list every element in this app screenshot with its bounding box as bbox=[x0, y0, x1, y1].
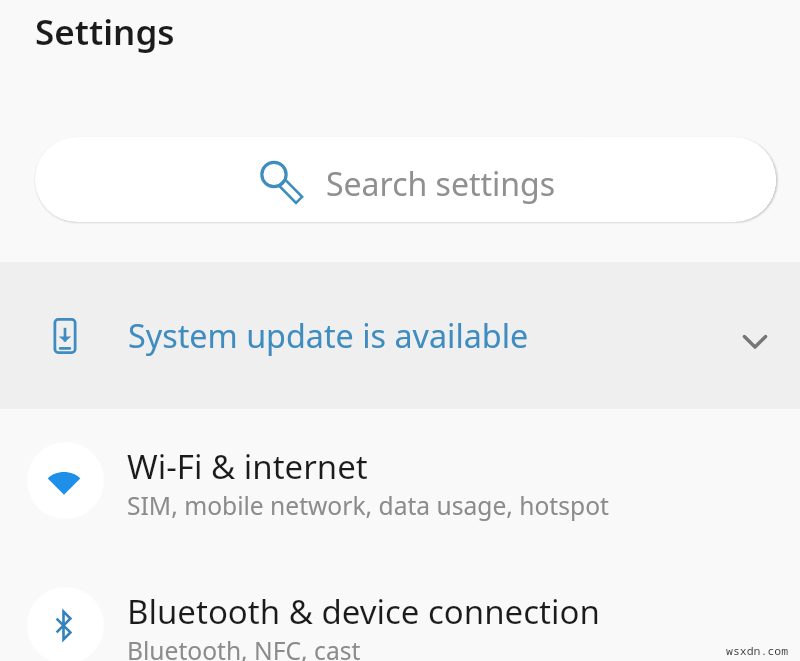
button[interactable]: Expand system update bbox=[726, 312, 784, 370]
button[interactable]: Search settings bbox=[35, 137, 776, 222]
staticText: Search settings bbox=[326, 162, 556, 206]
staticText: wsxdn.com bbox=[726, 643, 789, 659]
staticText: System update is available bbox=[128, 313, 529, 357]
staticText: Wi-Fi & internet bbox=[127, 444, 368, 489]
staticText: Bluetooth & device connection bbox=[127, 589, 600, 634]
staticText: SIM, mobile network, data usage, hotspot bbox=[127, 489, 609, 523]
staticText: Settings bbox=[35, 8, 175, 56]
staticText: Bluetooth, NFC, cast bbox=[127, 634, 361, 661]
button[interactable]: System update is available bbox=[0, 262, 800, 409]
button[interactable]: Bluetooth & device connection bbox=[0, 587, 800, 661]
button[interactable]: Wi-Fi & internet bbox=[0, 442, 800, 542]
